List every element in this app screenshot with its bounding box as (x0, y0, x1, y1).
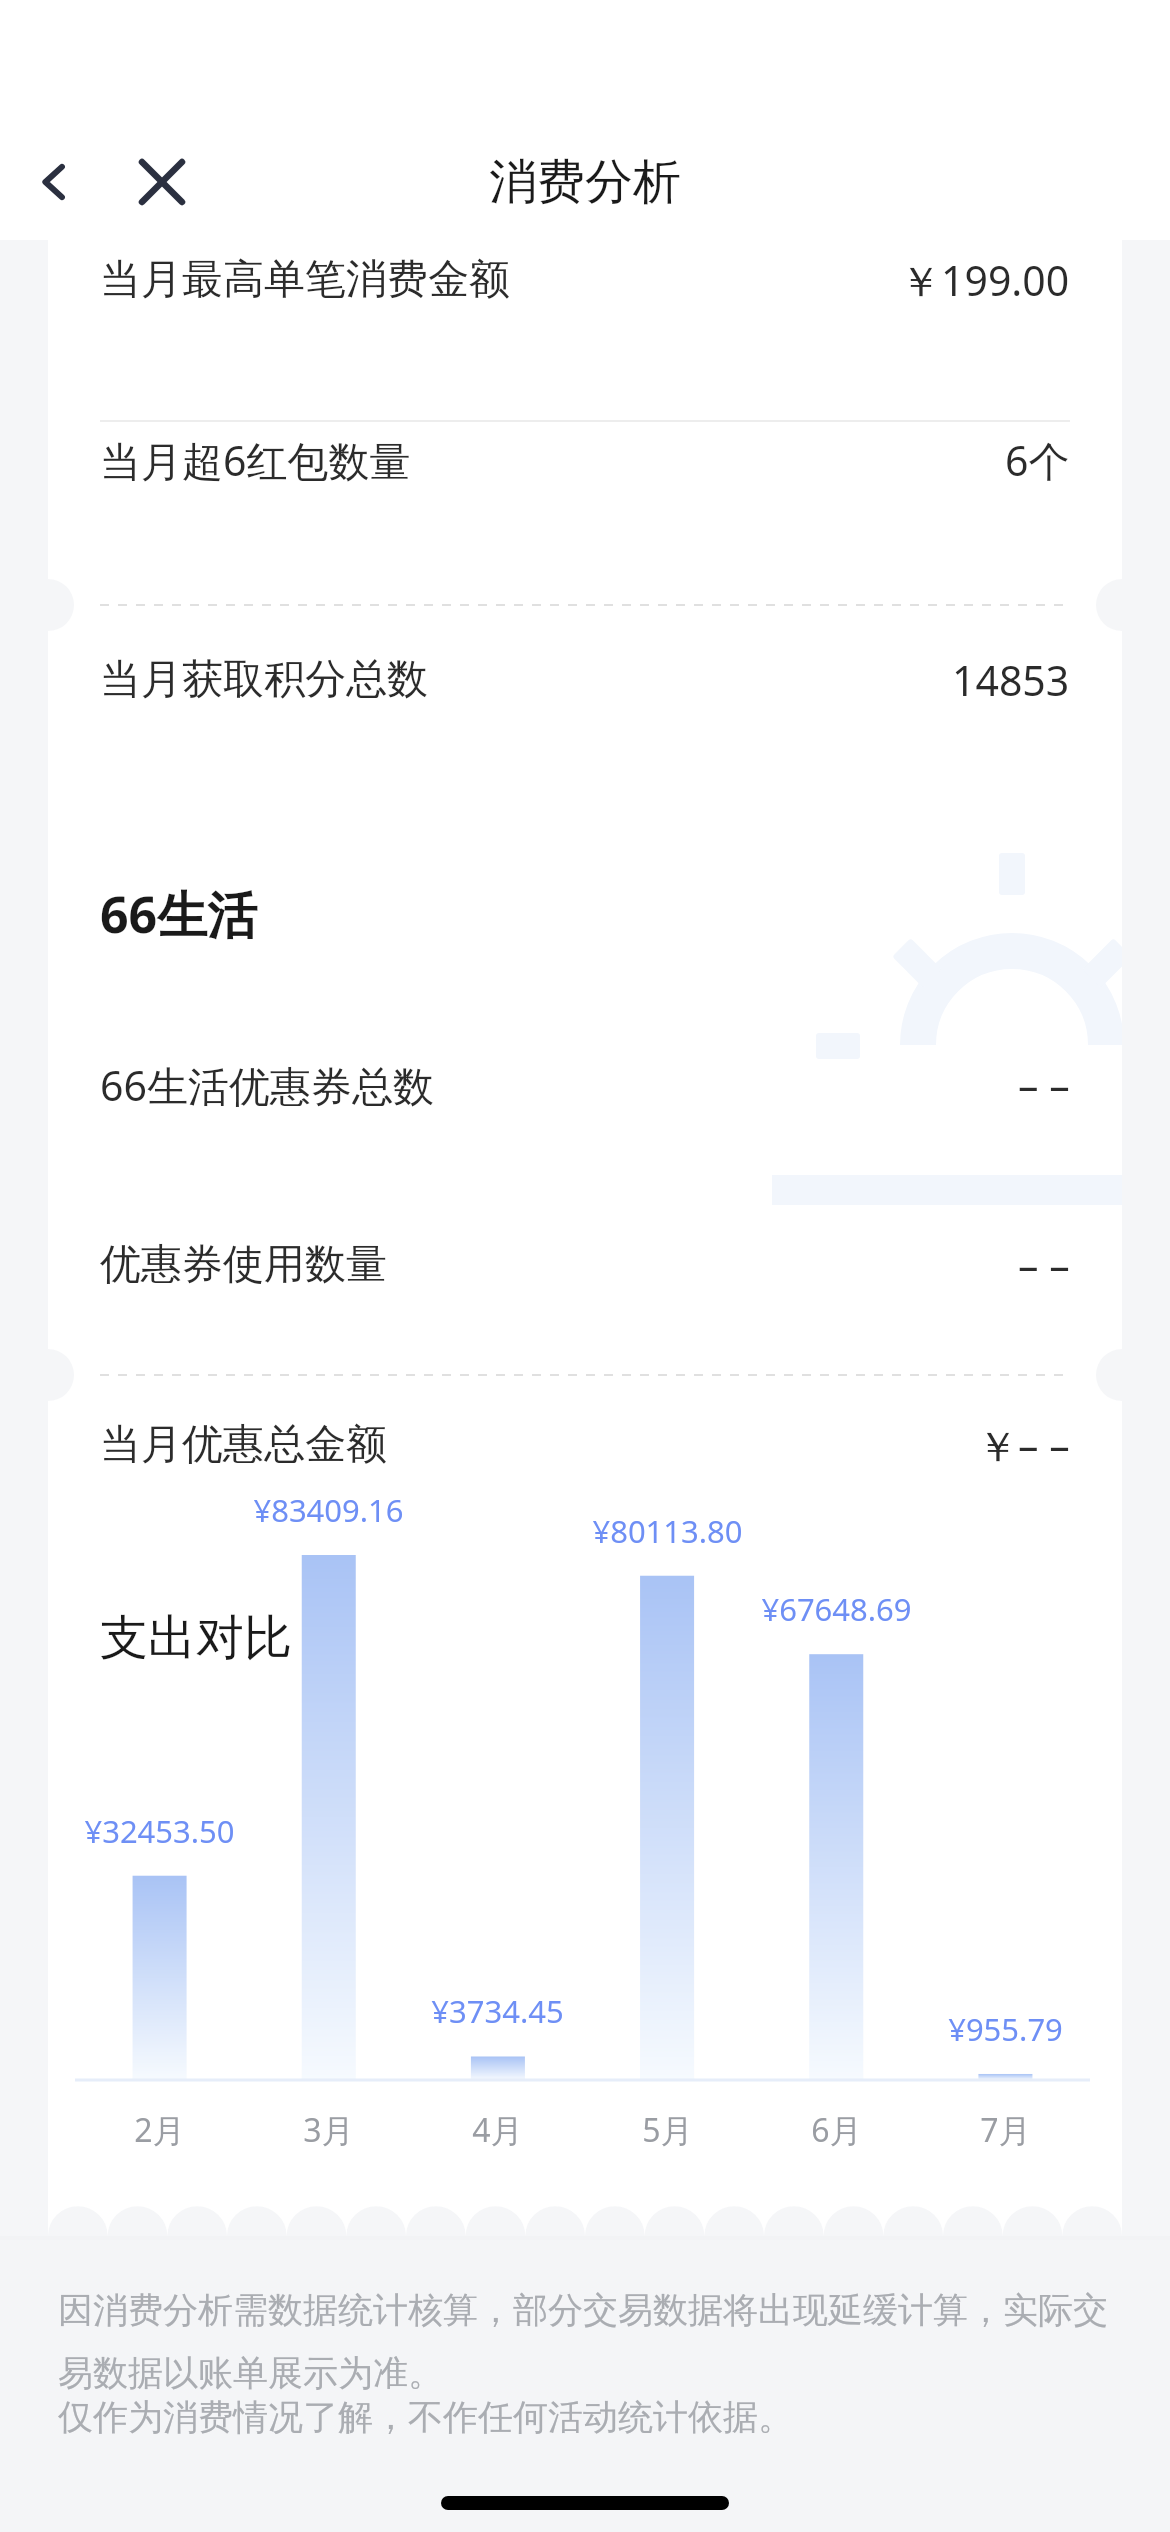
staticText: 14853 (952, 652, 1070, 708)
staticText: ￥– – (977, 1417, 1070, 1473)
staticText: – – (1018, 1237, 1070, 1293)
staticText: 当月最高单笔消费金额 (100, 254, 510, 306)
staticText: 优惠券使用数量 (100, 1239, 387, 1291)
button[interactable]: 优惠券使用数量 (100, 1220, 1070, 1310)
staticText: ¥67648.69 (761, 1588, 912, 1630)
staticText: 当月超6红包数量 (100, 432, 411, 488)
button[interactable]: 当月优惠总金额 (100, 1400, 1070, 1490)
staticText: 66生活优惠券总数 (100, 1057, 434, 1113)
staticText: 仅作为消费情况了解，不作任何活动统计依据。 (58, 2395, 793, 2439)
staticText: 消费分析 (489, 152, 681, 212)
staticText: 66生活 (100, 880, 258, 948)
button[interactable]: 66生活优惠券总数 (100, 1040, 1070, 1130)
button[interactable]: Back (14, 142, 94, 222)
staticText: 4月 (472, 2108, 523, 2152)
staticText: ¥3734.45 (431, 1990, 564, 2032)
staticText: ￥199.00 (900, 252, 1070, 308)
staticText: ¥83409.16 (253, 1489, 404, 1531)
staticText: 3月 (303, 2108, 354, 2152)
staticText: 6个 (1005, 432, 1070, 488)
staticText: 当月优惠总金额 (100, 1419, 387, 1471)
staticText: – – (1018, 1057, 1070, 1113)
staticText: ¥80113.80 (592, 1510, 743, 1552)
staticText: 当月获取积分总数 (100, 654, 428, 706)
button[interactable]: Close (122, 142, 202, 222)
button[interactable]: 当月获取积分总数 (100, 635, 1070, 725)
staticText: 2月 (134, 2108, 185, 2152)
staticText: ¥32453.50 (84, 1810, 235, 1852)
staticText: 支出对比 (100, 1608, 292, 1668)
button[interactable]: 当月最高单笔消费金额 (100, 235, 1070, 325)
staticText: 7月 (980, 2108, 1031, 2152)
button[interactable]: 当月超6红包数量 (100, 415, 1070, 505)
staticText: 6月 (811, 2108, 862, 2152)
staticText: ¥955.79 (948, 2008, 1063, 2050)
staticText: 5月 (642, 2108, 693, 2152)
staticText: 因消费分析需数据统计核算，部分交易数据将出现延缓计算，实际交易数据以账单展示为准… (58, 2288, 1128, 2395)
